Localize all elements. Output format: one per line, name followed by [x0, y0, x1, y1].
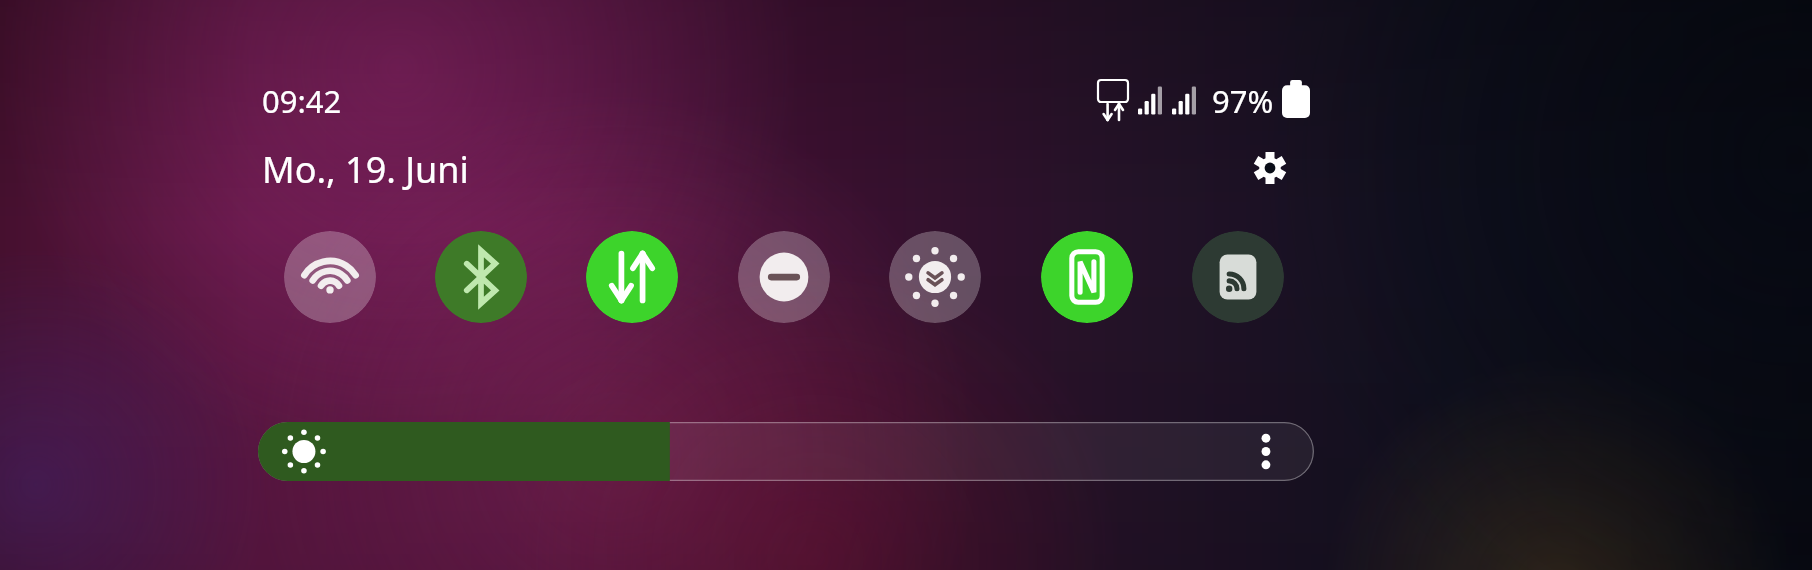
staticText: 97% [1212, 80, 1274, 122]
button[interactable]: Augenkomfort [889, 231, 981, 323]
button[interactable]: WLAN [284, 231, 376, 323]
button[interactable]: Smart View [1192, 231, 1284, 323]
button[interactable]: Nicht stören [738, 231, 830, 323]
button[interactable]: Mobile Daten [586, 231, 678, 323]
staticText: Mo., 19. Juni [262, 145, 469, 194]
button[interactable]: Einstellungen [1243, 141, 1297, 195]
button[interactable]: Bluetooth [435, 231, 527, 323]
button[interactable]: Helligkeit [258, 422, 1314, 481]
button[interactable]: Weitere Optionen [1238, 422, 1294, 481]
staticText: 09:42 [262, 80, 342, 122]
button[interactable]: NFC [1041, 231, 1133, 323]
